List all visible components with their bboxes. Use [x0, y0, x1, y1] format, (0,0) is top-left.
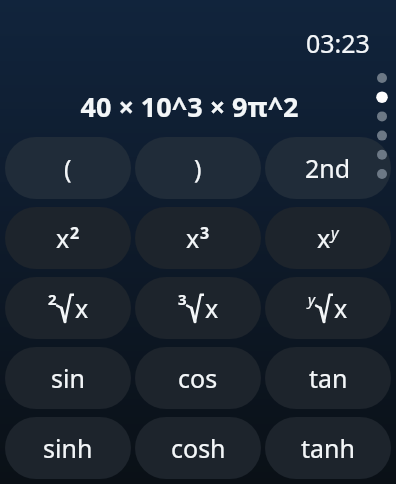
staticText: ) [194, 151, 202, 185]
staticText: 2nd [305, 151, 351, 185]
button[interactable]: y root of x [265, 277, 391, 339]
button[interactable]: cosh [135, 417, 261, 479]
button[interactable]: x to the power of y [265, 207, 391, 269]
staticText: ( [64, 151, 72, 185]
staticText: cos [178, 361, 218, 395]
button[interactable]: ( [5, 137, 131, 199]
button[interactable]: tanh [265, 417, 391, 479]
button[interactable]: sinh [5, 417, 131, 479]
staticText: 40 × 10^3 × 9π^2 [80, 88, 299, 125]
staticText: tanh [301, 431, 355, 465]
staticText: x [317, 221, 331, 255]
button[interactable]: cos [135, 347, 261, 409]
button[interactable]: 2nd [265, 137, 391, 199]
staticText: 3 [200, 222, 210, 244]
staticText: x [205, 291, 219, 325]
staticText: x [75, 291, 89, 325]
button[interactable]: tan [265, 347, 391, 409]
staticText: 2 [70, 222, 80, 244]
button[interactable]: x to the power of 3 [135, 207, 261, 269]
button[interactable]: 2 root of x [5, 277, 131, 339]
staticText: x [334, 291, 348, 325]
staticText: 3 [178, 289, 187, 309]
staticText: x [56, 221, 70, 255]
staticText: tan [309, 361, 348, 395]
button[interactable]: sin [5, 347, 131, 409]
staticText: y [308, 289, 316, 309]
staticText: y [331, 222, 339, 244]
button[interactable]: x to the power of 2 [5, 207, 131, 269]
staticText: cosh [171, 431, 226, 465]
button[interactable]: 3 root of x [135, 277, 261, 339]
staticText: 2 [48, 289, 57, 309]
staticText: sin [51, 361, 85, 395]
staticText: x [186, 221, 200, 255]
staticText: sinh [43, 431, 93, 465]
staticText: 03:23 [306, 26, 370, 60]
button[interactable]: ) [135, 137, 261, 199]
